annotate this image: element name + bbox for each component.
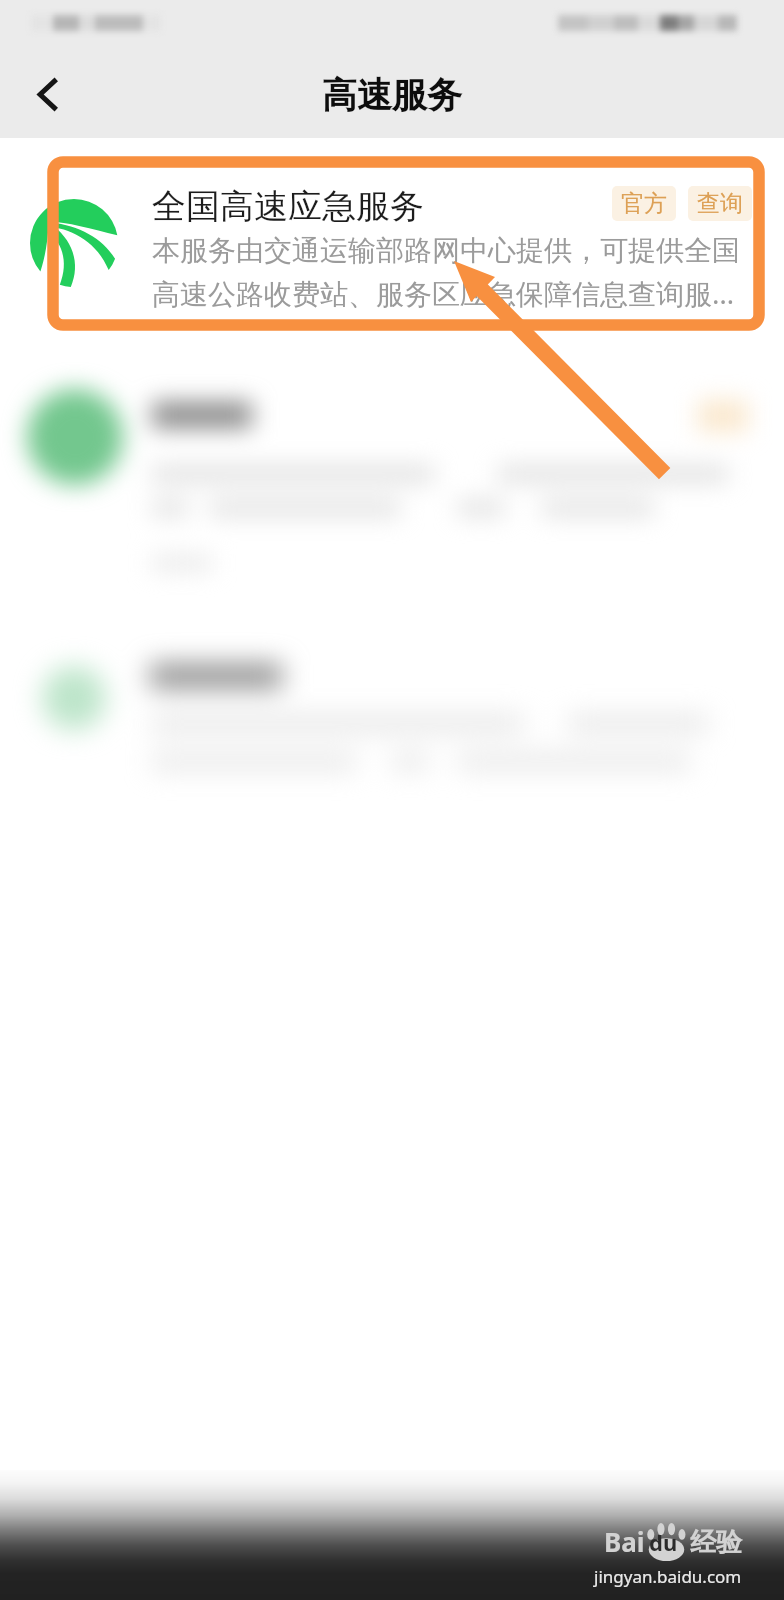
staticText: 经验 xyxy=(690,1526,742,1559)
staticText: jingyan.baidu.com xyxy=(594,1565,742,1588)
staticText: 高速服务 xyxy=(322,73,462,117)
staticText: 全国高速应急服务 xyxy=(152,185,424,228)
staticText: 查询 xyxy=(697,189,743,218)
staticText: Bai xyxy=(604,1524,645,1559)
staticText: du xyxy=(649,1527,678,1557)
staticText: 本服务由交通运输部路网中心提供，可提供全国高速公路收费站、服务区应急保障信息查询… xyxy=(152,233,764,312)
staticText: 官方 xyxy=(621,189,667,218)
button[interactable]: Back xyxy=(17,63,79,125)
button[interactable]: 全国高速应急服务 xyxy=(0,156,784,324)
